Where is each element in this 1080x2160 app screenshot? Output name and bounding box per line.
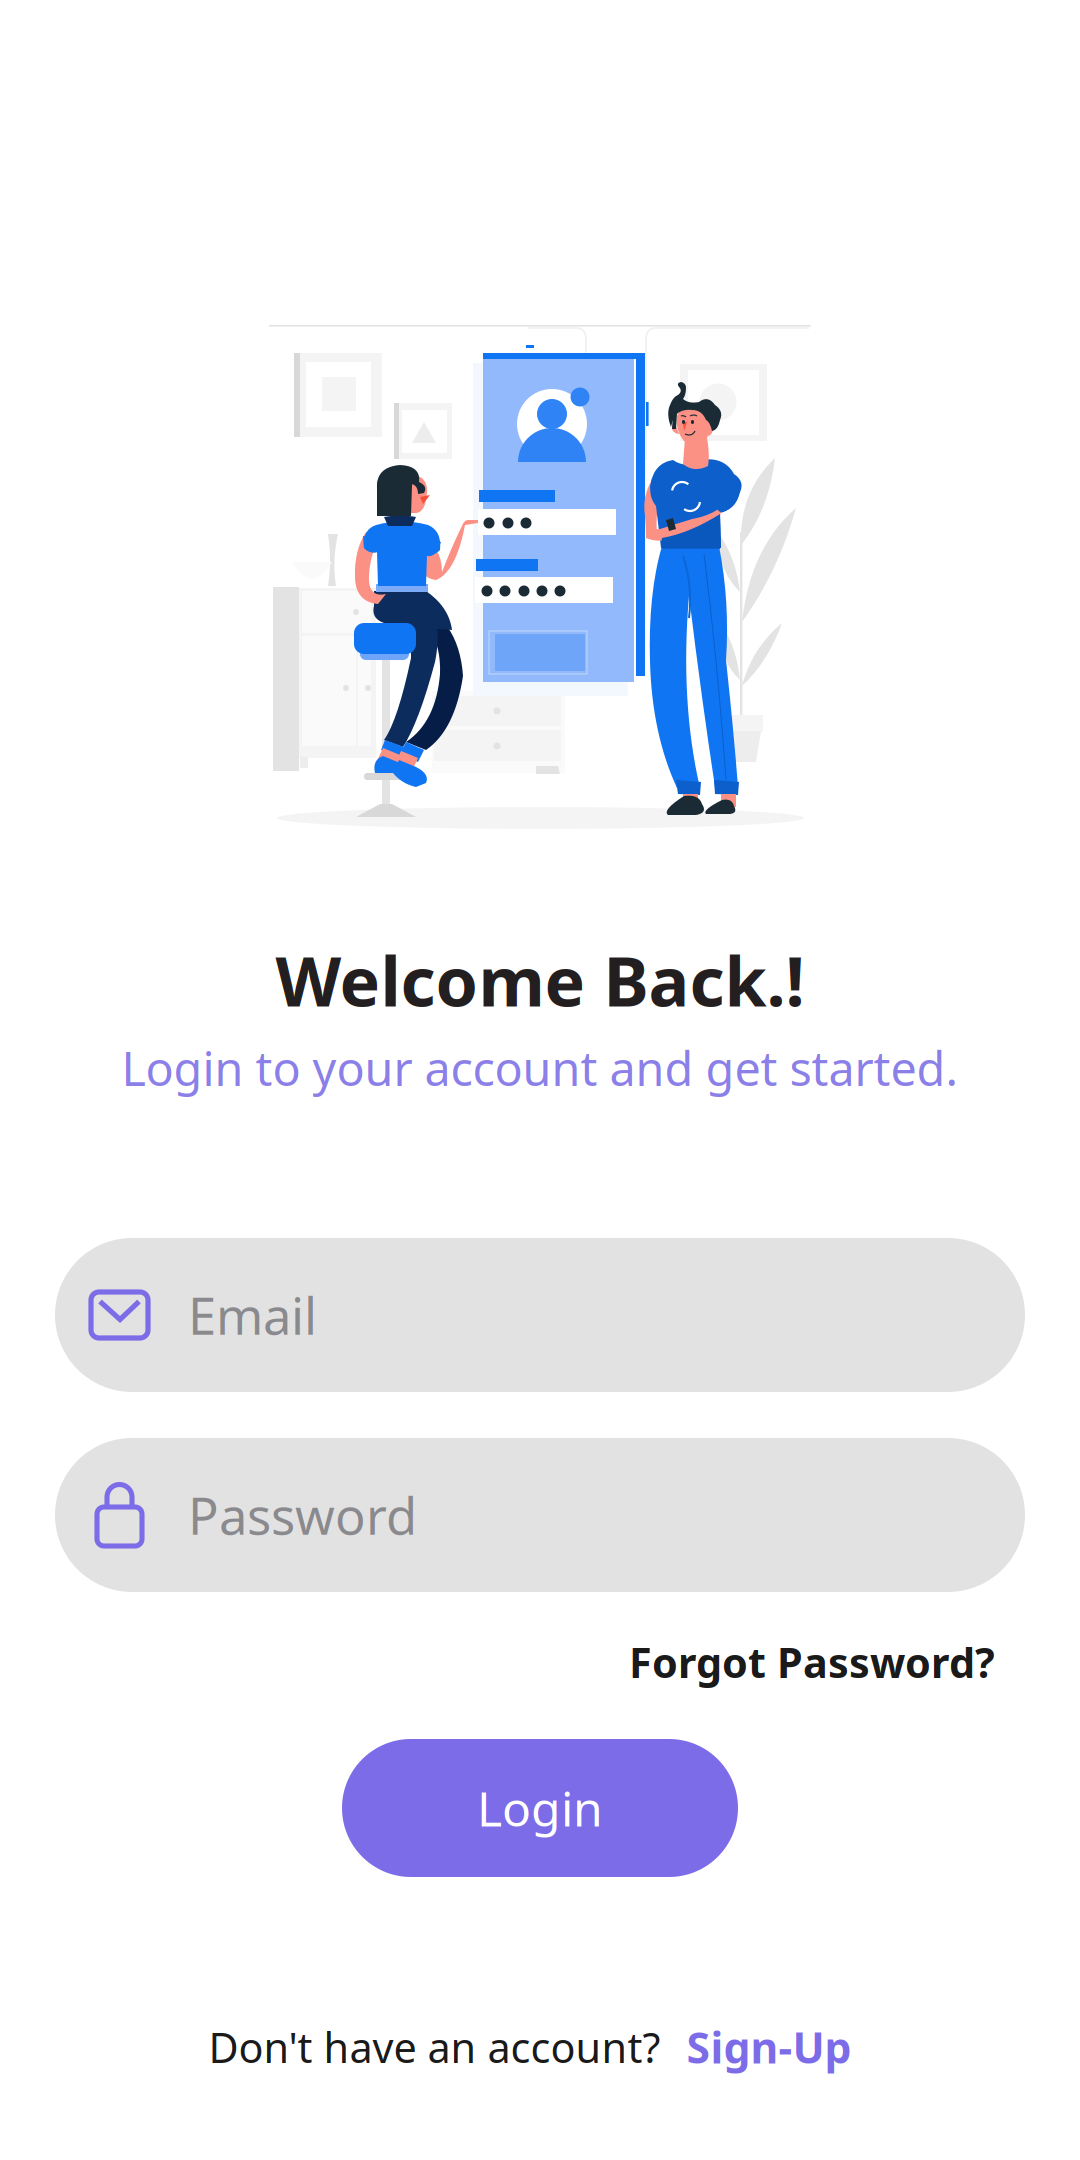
staticText: Password — [188, 1481, 417, 1549]
staticText: Sign-Up — [686, 2019, 851, 2075]
button[interactable]: Email — [55, 1238, 1025, 1392]
staticText: Email — [188, 1281, 317, 1349]
button[interactable]: Sign-Up — [686, 2019, 851, 2075]
staticText: Login to your account and get started. — [121, 1037, 958, 1099]
staticText: Welcome Back.! — [275, 935, 804, 1025]
staticText: Don't have an account? — [208, 2020, 660, 2074]
button[interactable]: Forgot Password? — [629, 1635, 995, 1689]
button[interactable]: Login — [342, 1739, 738, 1877]
staticText: Forgot Password? — [629, 1635, 995, 1689]
staticText: Login — [477, 1776, 603, 1840]
button[interactable]: Password — [55, 1438, 1025, 1592]
